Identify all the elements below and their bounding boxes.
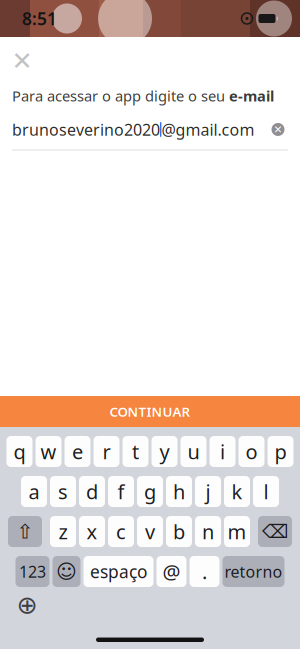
button[interactable]: c [108, 516, 134, 547]
staticText: s [58, 478, 68, 505]
button[interactable]: f [108, 476, 134, 507]
staticText: ✕ [273, 123, 282, 135]
staticText: u [187, 438, 199, 465]
staticText: c [116, 518, 126, 545]
button[interactable]: t [122, 436, 148, 467]
button[interactable]: retorno [222, 556, 284, 587]
staticText: o [245, 438, 257, 465]
staticText: CONTINUAR [109, 403, 190, 420]
staticText: f [117, 478, 124, 505]
button[interactable]: espaço [83, 556, 153, 587]
button[interactable]: w [35, 436, 61, 467]
staticText: h [173, 478, 185, 505]
staticText: m [227, 518, 246, 545]
staticText: v [145, 518, 155, 545]
button[interactable]: v [137, 516, 163, 547]
staticText: i [220, 438, 225, 465]
staticText: e [72, 438, 83, 465]
button[interactable]: b [166, 516, 192, 547]
staticText: j [205, 478, 210, 505]
staticText: brunoseverino2020 [12, 119, 160, 140]
staticText: ✕ [11, 47, 32, 75]
button[interactable]: r [93, 436, 119, 467]
staticText: a [28, 478, 39, 505]
button[interactable]: a [21, 476, 47, 507]
staticText: x [86, 518, 97, 545]
staticText: r [102, 438, 110, 465]
button[interactable]: y [151, 436, 177, 467]
staticText: d [86, 478, 98, 505]
button[interactable]: p [267, 436, 293, 467]
button[interactable]: i [209, 436, 235, 467]
button[interactable]: s [50, 476, 76, 507]
staticText: 123 [19, 561, 46, 582]
staticText: Para acessar o app digite o seu [12, 86, 229, 105]
button[interactable]: m [224, 516, 250, 547]
staticText: @ [162, 558, 180, 585]
button[interactable]: d [79, 476, 105, 507]
button[interactable]: x [79, 516, 105, 547]
button[interactable]: Shift [8, 516, 42, 547]
staticText: e-mail [229, 86, 274, 105]
button[interactable]: Mudar idioma [10, 591, 44, 619]
button[interactable]: Emoji [52, 556, 80, 587]
staticText: z [58, 518, 67, 545]
staticText: ⇧ [16, 520, 33, 543]
staticText: w [40, 438, 56, 465]
staticText: ⌫ [262, 521, 288, 542]
staticText: 8:51 [22, 7, 57, 30]
button[interactable]: Arroba [156, 556, 186, 587]
button[interactable]: Limpar texto [264, 116, 292, 142]
button[interactable]: g [137, 476, 163, 507]
staticText: ⊕ [16, 591, 37, 619]
button[interactable]: l [253, 476, 279, 507]
button[interactable]: u [180, 436, 206, 467]
button[interactable]: e [64, 436, 90, 467]
staticText: espaço [90, 560, 147, 583]
button[interactable]: k [224, 476, 250, 507]
button[interactable]: n [195, 516, 221, 547]
button[interactable]: q [6, 436, 32, 467]
staticText: ☺ [56, 560, 77, 583]
staticText: b [173, 518, 185, 545]
staticText: @gmail.com [161, 119, 254, 140]
staticText: k [231, 478, 242, 505]
staticText: l [263, 478, 268, 505]
button[interactable]: o [238, 436, 264, 467]
staticText: retorno [224, 561, 282, 582]
button[interactable]: h [166, 476, 192, 507]
staticText: q [13, 438, 25, 465]
button[interactable]: j [195, 476, 221, 507]
staticText: . [202, 558, 207, 585]
staticText: p [274, 438, 286, 465]
button[interactable]: Números [15, 556, 49, 587]
button[interactable]: CONTINUAR [0, 396, 300, 427]
staticText: t [132, 438, 139, 465]
staticText: y [159, 438, 169, 465]
staticText: g [144, 478, 156, 505]
button[interactable]: Ponto [189, 556, 219, 587]
staticText: n [202, 518, 214, 545]
button[interactable]: z [50, 516, 76, 547]
button[interactable]: Apagar [258, 516, 292, 547]
button[interactable]: Fechar [4, 45, 40, 77]
